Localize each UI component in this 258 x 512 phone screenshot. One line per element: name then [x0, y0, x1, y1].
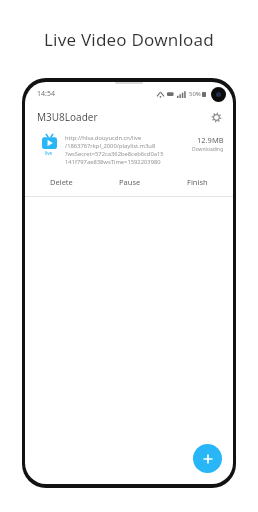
button[interactable]: Add new download	[193, 444, 222, 473]
staticText: 12.9MB	[197, 135, 224, 145]
staticText: Downloading	[192, 146, 224, 153]
staticText: /1863767rkpl_2000/playlist.m3u8	[65, 142, 156, 150]
button[interactable]: Settings	[207, 108, 225, 126]
staticText: Finish	[187, 177, 208, 187]
staticText: Pause	[119, 177, 141, 187]
staticText: 14:54	[37, 89, 55, 99]
button[interactable]: live	[25, 130, 233, 197]
staticText: live	[45, 150, 53, 156]
staticText: M3U8Loader	[37, 110, 98, 124]
staticText: ?wsSecret=572ca362be8ceb6cd0a15	[65, 150, 164, 158]
staticText: Delete	[50, 177, 73, 187]
button[interactable]: Delete	[42, 175, 81, 189]
button[interactable]: Finish	[179, 175, 216, 189]
staticText: 141f797ae838wsTime=1592203980	[65, 158, 161, 166]
staticText: http://hlsa.douyucdn.cn/live	[65, 134, 142, 142]
staticText: 50%	[189, 90, 201, 98]
button[interactable]: Pause	[111, 175, 149, 189]
staticText: Live Video Download	[44, 28, 214, 51]
